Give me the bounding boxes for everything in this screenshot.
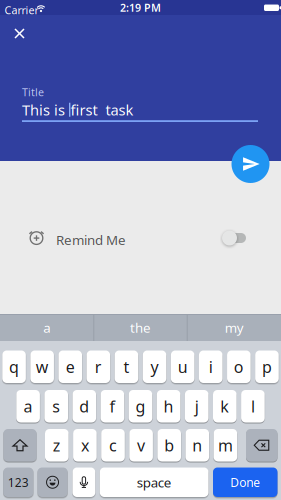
button[interactable]: d	[72, 390, 96, 422]
button[interactable]: b	[157, 429, 181, 461]
button[interactable]: s	[44, 390, 68, 422]
button[interactable]: l	[241, 390, 265, 422]
button[interactable]: t	[115, 350, 138, 383]
button[interactable]: 123	[3, 467, 33, 497]
button[interactable]: c	[101, 429, 125, 461]
staticText: h	[164, 396, 174, 417]
staticText: f	[109, 396, 115, 417]
button[interactable]: j	[185, 390, 208, 422]
button[interactable]: Remind Me	[221, 227, 246, 245]
button[interactable]: m	[214, 429, 237, 461]
button[interactable]: Title	[22, 97, 258, 123]
staticText: e	[66, 356, 75, 377]
staticText: b	[164, 435, 174, 456]
button[interactable]: f	[101, 390, 124, 422]
staticText: s	[52, 396, 60, 417]
staticText: space	[137, 473, 172, 491]
staticText: Title	[22, 85, 44, 99]
staticText: p	[262, 356, 272, 377]
staticText: my	[225, 319, 244, 336]
button[interactable]: p	[255, 350, 279, 383]
staticText: w	[36, 356, 49, 377]
staticText: o	[234, 356, 244, 377]
staticText: y	[151, 356, 159, 377]
staticText: Done	[230, 474, 260, 490]
staticText: Remind Me	[56, 231, 126, 249]
button[interactable]: e	[58, 350, 82, 383]
staticText: n	[192, 435, 202, 456]
staticText: t	[123, 356, 129, 377]
staticText: g	[135, 396, 145, 417]
staticText: Carrier	[4, 3, 38, 17]
button[interactable]: Shift	[3, 429, 36, 461]
button[interactable]: space	[100, 467, 208, 497]
button[interactable]: o	[227, 350, 251, 383]
button[interactable]: h	[157, 390, 180, 422]
button[interactable]: a	[0, 314, 93, 341]
staticText: q	[9, 356, 19, 377]
button[interactable]: v	[129, 429, 153, 461]
staticText: i	[209, 356, 213, 377]
staticText: z	[53, 435, 61, 456]
staticText: the	[130, 319, 151, 336]
button[interactable]: a	[16, 390, 40, 422]
staticText: x	[81, 435, 89, 456]
button[interactable]: Done	[213, 467, 277, 497]
button[interactable]: Save task	[231, 145, 269, 183]
staticText: l	[251, 396, 255, 417]
staticText: m	[218, 435, 233, 456]
staticText: c	[109, 435, 117, 456]
button[interactable]: q	[2, 350, 26, 383]
button[interactable]: the	[94, 314, 187, 341]
button[interactable]: g	[129, 390, 152, 422]
button[interactable]: Close	[9, 23, 30, 44]
staticText: j	[195, 396, 199, 417]
staticText: 2:19 PM	[120, 0, 161, 15]
staticText: a	[24, 396, 33, 417]
staticText: k	[220, 396, 229, 417]
button[interactable]: my	[188, 314, 281, 341]
staticText: a	[43, 319, 50, 336]
staticText: r	[95, 356, 102, 377]
staticText: v	[137, 435, 145, 456]
staticText: u	[178, 356, 188, 377]
button[interactable]: u	[171, 350, 194, 383]
button[interactable]: r	[87, 350, 110, 383]
button[interactable]: z	[45, 429, 69, 461]
button[interactable]: x	[73, 429, 97, 461]
staticText: This is	[22, 100, 69, 119]
button[interactable]: w	[30, 350, 54, 383]
button[interactable]: k	[213, 390, 237, 422]
staticText: first task	[70, 100, 133, 119]
button[interactable]: Dictate	[72, 467, 95, 497]
button[interactable]: Delete	[246, 429, 277, 461]
button[interactable]: n	[185, 429, 209, 461]
button[interactable]: Emoji	[38, 467, 67, 497]
button[interactable]: y	[143, 350, 166, 383]
staticText: 123	[8, 474, 29, 490]
staticText: d	[79, 396, 89, 417]
button[interactable]: i	[199, 350, 223, 383]
